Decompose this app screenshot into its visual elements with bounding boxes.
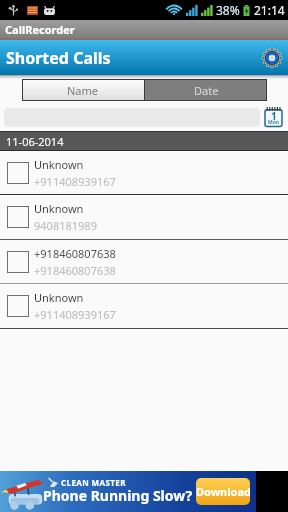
- button[interactable]: Date: [145, 79, 267, 101]
- button[interactable]: CLEAN MASTER: [0, 471, 256, 512]
- staticText: 21:14: [254, 2, 285, 18]
- staticText: 11-06-2014: [6, 134, 64, 149]
- button[interactable]: Name: [22, 79, 144, 101]
- staticText: +911408939167: [34, 174, 116, 189]
- staticText: Unknown: [34, 157, 84, 172]
- staticText: Mon: [268, 119, 280, 126]
- staticText: Shorted Calls: [6, 47, 111, 69]
- staticText: CLEAN MASTER: [61, 477, 126, 488]
- staticText: Phone Running Slow?: [43, 486, 193, 505]
- staticText: Download: [196, 484, 250, 499]
- button[interactable]: Pick date: [265, 107, 282, 127]
- button[interactable]: Settings: [262, 48, 282, 68]
- staticText: Unknown: [34, 201, 84, 216]
- staticText: Name: [67, 83, 99, 98]
- staticText: 1: [271, 109, 277, 123]
- button[interactable]: Unknown: [0, 151, 288, 195]
- staticText: Date: [194, 83, 219, 98]
- staticText: 9408181989: [34, 218, 97, 233]
- button[interactable]: Unknown: [0, 284, 288, 329]
- staticText: Unknown: [34, 290, 84, 305]
- staticText: +911408939167: [34, 307, 116, 322]
- button[interactable]: Unknown: [0, 195, 288, 240]
- button[interactable]: Download: [196, 478, 250, 505]
- staticText: 38%: [216, 2, 240, 18]
- staticText: +918460807638: [34, 263, 116, 278]
- staticText: CallRecorder: [5, 22, 75, 37]
- staticText: +918460807638: [34, 246, 116, 261]
- button[interactable]: +918460807638: [0, 240, 288, 284]
